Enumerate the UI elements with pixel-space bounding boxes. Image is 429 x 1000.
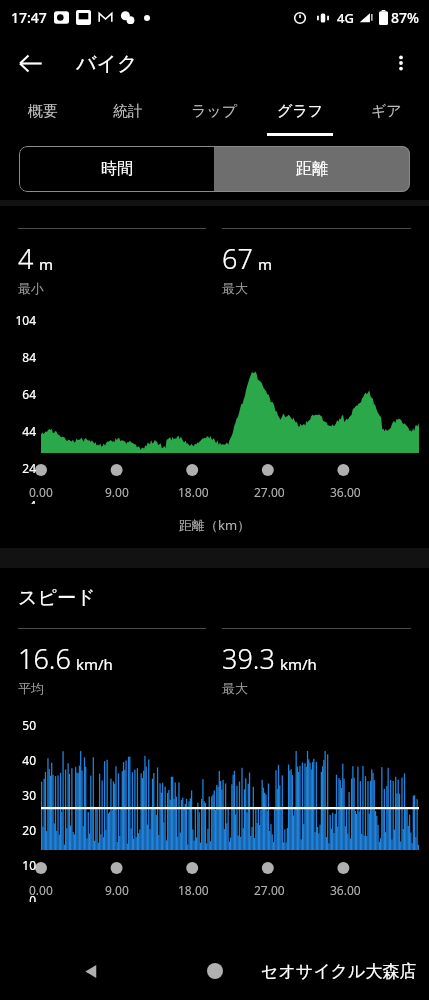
button[interactable]: ラップ [171,92,257,140]
staticText: 44 [0,423,36,439]
staticText: ギア [371,102,402,121]
staticText: m [258,254,273,274]
staticText: km/h [280,654,317,674]
staticText: 16.6 [18,640,71,677]
button[interactable]: Back [6,39,54,87]
button[interactable]: ギア [343,92,429,140]
staticText: 4 [0,497,36,504]
button[interactable]: More options [378,40,424,86]
staticText: 時間 [101,159,133,179]
staticText: 18.00 [178,484,209,500]
button[interactable]: グラフ [257,92,343,140]
staticText: 統計 [113,102,143,121]
staticText: 40 [0,752,36,768]
staticText: 36.00 [330,882,361,898]
staticText: 18.00 [178,882,209,898]
staticText: バイク [76,51,138,76]
staticText: m [39,254,54,274]
staticText: 27.00 [254,484,285,500]
staticText: 平均 [18,680,44,696]
staticText: 50 [0,717,36,733]
staticText: 0.00 [29,882,53,898]
staticText: 67 [222,240,253,277]
button[interactable]: 時間 [19,146,214,192]
button[interactable]: Back [70,950,112,992]
staticText: 87% [391,8,419,27]
staticText: 24 [0,460,36,476]
staticText: 最大 [222,280,248,296]
staticText: 概要 [28,102,58,121]
staticText: 17:47 [11,8,47,27]
staticText: 64 [0,386,36,402]
staticText: 104 [0,312,36,328]
staticText: 20 [0,822,36,838]
staticText: 4 [18,240,34,277]
staticText: 距離（km） [179,516,251,534]
staticText: 4G [337,9,354,27]
staticText: 36.00 [330,484,361,500]
staticText: km/h [76,654,113,674]
staticText: 10 [0,857,36,873]
staticText: セオサイクル大森店 [261,961,417,982]
staticText: 0.00 [29,484,53,500]
staticText: ラップ [191,102,238,121]
button[interactable]: Home [194,950,236,992]
button[interactable]: 概要 [0,92,85,140]
button[interactable]: 統計 [85,92,171,140]
staticText: 9.00 [105,484,129,500]
staticText: 距離 [296,159,328,179]
staticText: 84 [0,349,36,365]
staticText: 27.00 [254,882,285,898]
staticText: 9.00 [105,882,129,898]
staticText: 0 [0,892,36,902]
staticText: 30 [0,787,36,803]
staticText: グラフ [277,102,324,121]
button[interactable]: 距離 [214,146,410,192]
staticText: 39.3 [222,640,275,677]
staticText: 最大 [222,680,248,696]
staticText: 最小 [18,280,44,296]
staticText: スピード [18,586,96,610]
